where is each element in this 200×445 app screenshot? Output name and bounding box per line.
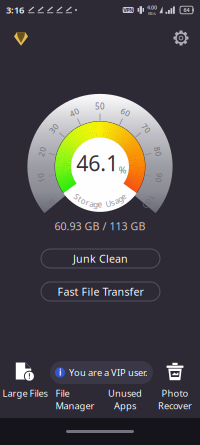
staticText: 40 xyxy=(69,107,79,117)
staticText: o xyxy=(81,195,86,206)
staticText: KB/s xyxy=(148,11,156,16)
button[interactable]: Fast File Transfer xyxy=(41,282,160,301)
staticText: % xyxy=(119,164,127,176)
button[interactable]: Junk Clean xyxy=(41,249,160,268)
staticText: File Manager xyxy=(55,387,94,412)
staticText: t xyxy=(78,193,81,204)
staticText: 20 xyxy=(37,146,47,157)
staticText: 46.1 xyxy=(76,149,118,177)
staticText: S xyxy=(74,191,78,202)
staticText: a xyxy=(114,195,118,206)
staticText: e xyxy=(121,191,126,202)
staticText: 4.00 xyxy=(147,4,157,11)
staticText: 70 xyxy=(141,123,151,133)
button[interactable]: Large Files xyxy=(0,362,50,414)
staticText: 80 xyxy=(153,146,163,157)
staticText: Recover xyxy=(158,399,192,412)
staticText: 60 xyxy=(120,107,130,117)
staticText: Unused xyxy=(108,387,142,399)
staticText: g xyxy=(93,199,98,210)
staticText: Junk Clean xyxy=(73,251,128,266)
staticText: s xyxy=(110,197,114,208)
staticText: r xyxy=(86,197,89,208)
staticText: a xyxy=(90,198,94,209)
button[interactable]: Photo xyxy=(150,362,200,414)
staticText: U xyxy=(105,198,111,209)
staticText: 50 xyxy=(95,101,105,112)
button[interactable]: File Manager xyxy=(50,362,100,414)
staticText: Large Files xyxy=(2,387,47,399)
staticText: 10 xyxy=(36,172,46,183)
staticText: You are a VIP user. xyxy=(69,366,148,379)
button[interactable]: Premium xyxy=(6,24,36,54)
staticText: Apps xyxy=(114,399,136,412)
staticText: g xyxy=(118,193,123,204)
staticText: 3:16 xyxy=(6,4,24,16)
staticText: Photo xyxy=(161,387,188,399)
staticText: 90 xyxy=(154,172,164,183)
staticText: e xyxy=(97,199,102,210)
staticText: 0 xyxy=(49,196,54,207)
staticText: 60.93 GB / 113 GB xyxy=(54,219,145,233)
staticText: 100 xyxy=(141,196,156,207)
staticText: VPN xyxy=(123,6,133,14)
button[interactable]: Unused xyxy=(100,362,150,414)
staticText: 64 xyxy=(183,6,189,14)
button[interactable]: Settings xyxy=(166,23,196,53)
staticText: i xyxy=(59,367,61,378)
staticText: 30 xyxy=(49,123,59,133)
staticText: Fast File Transfer xyxy=(57,284,143,299)
